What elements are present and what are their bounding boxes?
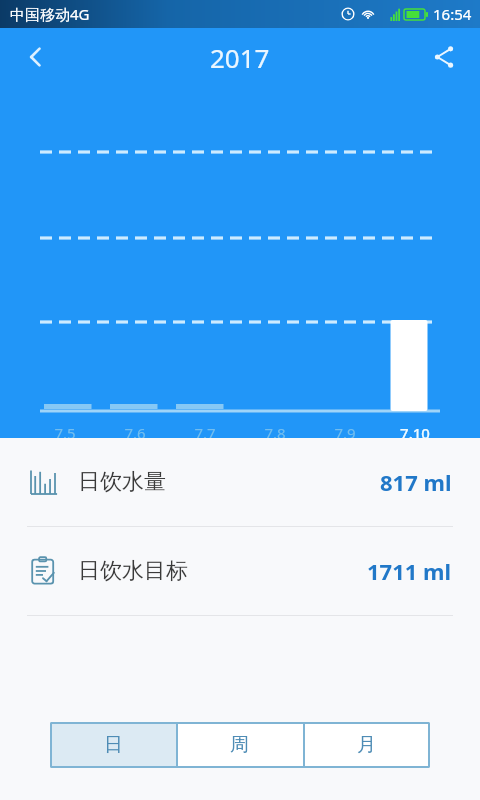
staticText: 7.9 [310, 423, 380, 438]
button[interactable]: 日 [50, 722, 176, 768]
button[interactable]: 月 [303, 722, 430, 768]
staticText: 日饮水量 [78, 468, 166, 496]
staticText: 7.7 [170, 423, 240, 438]
staticText: 日 [104, 733, 123, 757]
staticText: 周 [230, 733, 249, 757]
staticText: 7.5 [30, 423, 100, 438]
button[interactable]: 日饮水量 [0, 438, 480, 526]
staticText: 日饮水目标 [78, 557, 188, 585]
button[interactable]: 日饮水目标 [0, 527, 480, 615]
staticText: 7.10 [380, 423, 450, 438]
staticText: 817 ml [380, 467, 452, 497]
staticText: 16:54 [433, 4, 472, 24]
staticText: 2017 [210, 40, 270, 75]
staticText: 7.6 [100, 423, 170, 438]
staticText: 1711 ml [367, 556, 452, 586]
button[interactable]: 周 [176, 722, 303, 768]
button[interactable]: Back [14, 35, 58, 79]
button[interactable]: Share [422, 35, 466, 79]
staticText: 7.8 [240, 423, 310, 438]
staticText: 中国移动4G [10, 4, 90, 24]
staticText: 月 [357, 733, 376, 757]
